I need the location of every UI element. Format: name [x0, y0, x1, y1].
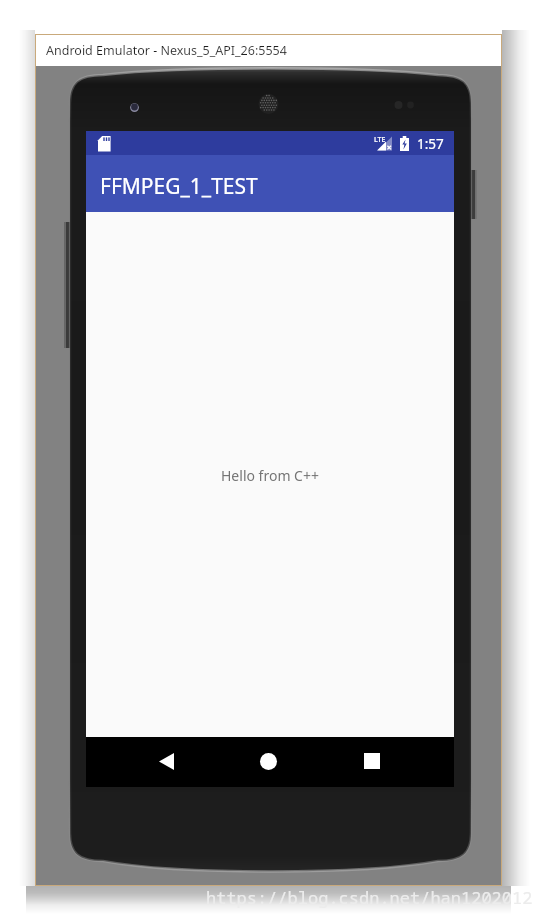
staticText: FFMPEG_1_TEST: [100, 172, 258, 201]
staticText: 1:57: [417, 135, 444, 153]
button[interactable]: FFMPEG_1_TEST: [86, 155, 454, 212]
staticText: Android Emulator - Nexus_5_API_26:5554: [46, 42, 287, 59]
button[interactable]: Home: [246, 739, 290, 783]
staticText: Hello from C++: [221, 466, 319, 485]
staticText: LTE: [374, 135, 386, 145]
button[interactable]: Recent apps: [350, 739, 394, 783]
button[interactable]: Back: [144, 739, 188, 783]
staticText: https://blog.csdn.net/han1202012: [206, 886, 533, 909]
